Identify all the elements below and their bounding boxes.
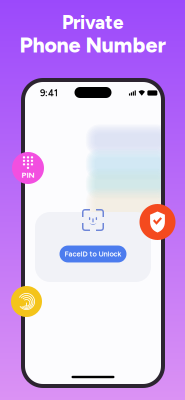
button[interactable]: Fingerprint unlock — [11, 286, 42, 317]
staticText: FaceID to Unlock — [64, 249, 121, 258]
button[interactable]: FaceID to Unlock — [59, 245, 126, 262]
staticText: Phone Number — [19, 32, 165, 58]
button[interactable]: PIN unlock — [12, 152, 44, 184]
staticText: 9:41 — [40, 87, 58, 99]
staticText: PIN — [21, 170, 34, 180]
staticText: Private — [62, 11, 123, 34]
button[interactable]: Verified secure — [139, 204, 175, 240]
